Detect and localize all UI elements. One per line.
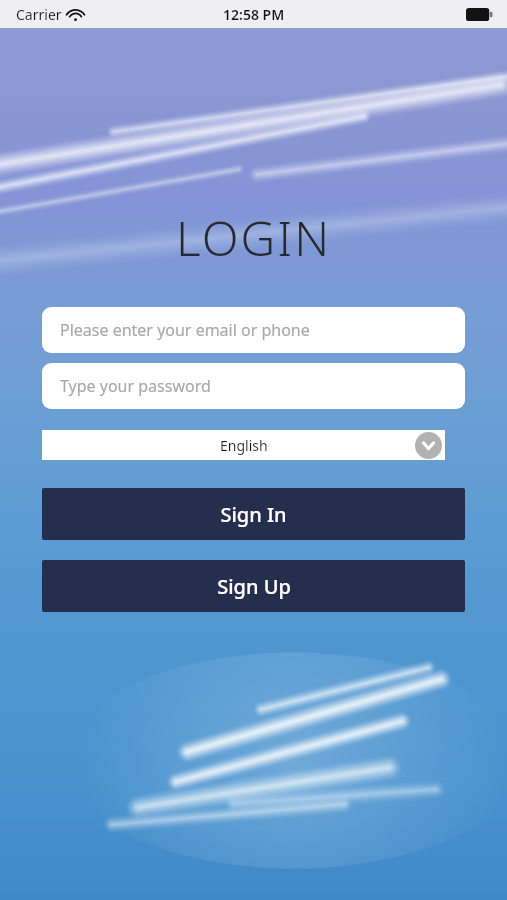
staticText: Sign In	[220, 501, 287, 528]
staticText: Type your password	[60, 375, 211, 397]
button[interactable]: Sign Up	[42, 560, 465, 612]
other: Choose language	[415, 432, 442, 459]
staticText: 12:58 PM	[223, 5, 285, 24]
staticText: Please enter your email or phone	[60, 319, 310, 341]
staticText: Sign Up	[217, 573, 291, 600]
button[interactable]: Please enter your email or phone	[42, 307, 465, 353]
button[interactable]: Sign In	[42, 488, 465, 540]
button[interactable]: Type your password	[42, 363, 465, 409]
staticText: English	[220, 436, 268, 455]
staticText: LOGIN	[0, 205, 507, 270]
staticText: Carrier	[16, 5, 62, 24]
button[interactable]: English	[42, 430, 465, 460]
